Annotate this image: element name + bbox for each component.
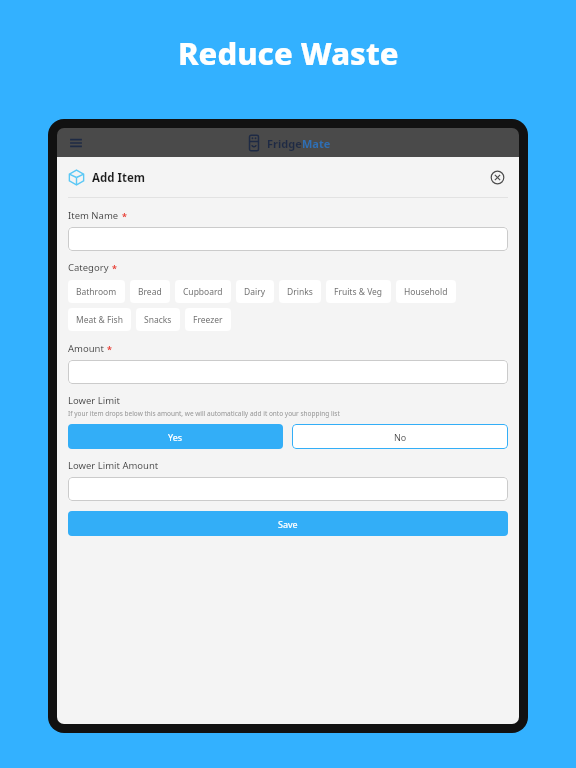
staticText: Yes bbox=[168, 431, 183, 443]
button[interactable]: Drinks bbox=[279, 280, 321, 303]
staticText: Meat & Fish bbox=[76, 314, 123, 326]
button[interactable]: Household bbox=[396, 280, 456, 303]
button[interactable]: Meat & Fish bbox=[68, 308, 131, 331]
staticText: Drinks bbox=[287, 286, 313, 298]
button[interactable] bbox=[68, 477, 508, 501]
staticText: Cupboard bbox=[183, 286, 223, 298]
staticText: Category bbox=[68, 261, 109, 274]
staticText: Amount bbox=[68, 342, 104, 355]
staticText: Bread bbox=[138, 286, 162, 298]
staticText: Lower Limit bbox=[68, 394, 120, 407]
button[interactable]: Bathroom bbox=[68, 280, 125, 303]
button[interactable]: Save bbox=[68, 511, 508, 536]
staticText: Bathroom bbox=[76, 286, 117, 298]
staticText: Freezer bbox=[193, 314, 223, 326]
button[interactable]: No bbox=[292, 424, 508, 449]
staticText: Fridge bbox=[267, 136, 302, 151]
button[interactable]: Dairy bbox=[236, 280, 274, 303]
button[interactable]: Bread bbox=[130, 280, 170, 303]
staticText: Save bbox=[278, 518, 298, 530]
staticText: Household bbox=[404, 286, 448, 298]
button[interactable]: Snacks bbox=[136, 308, 180, 331]
staticText: If your item drops below this amount, we… bbox=[68, 409, 340, 418]
button[interactable]: Cupboard bbox=[175, 280, 231, 303]
staticText: Mate bbox=[302, 136, 331, 151]
staticText: Dairy bbox=[244, 286, 266, 298]
staticText: * bbox=[122, 210, 127, 222]
staticText: * bbox=[112, 262, 117, 274]
staticText: Snacks bbox=[144, 314, 172, 326]
button[interactable] bbox=[68, 227, 508, 251]
staticText: Item Name bbox=[68, 209, 119, 222]
staticText: * bbox=[107, 343, 112, 355]
button[interactable]: Fruits & Veg bbox=[326, 280, 391, 303]
staticText: No bbox=[394, 431, 407, 443]
button[interactable]: Add Item bbox=[68, 169, 146, 186]
staticText: Fruits & Veg bbox=[334, 286, 383, 298]
button[interactable]: Close bbox=[486, 166, 508, 188]
staticText: Lower Limit Amount bbox=[68, 459, 159, 472]
staticText: Reduce Waste bbox=[178, 32, 399, 74]
button[interactable]: Menu bbox=[65, 132, 87, 154]
button[interactable]: Yes bbox=[68, 424, 283, 449]
button[interactable] bbox=[68, 360, 508, 384]
button[interactable]: Freezer bbox=[185, 308, 231, 331]
staticText: Add Item bbox=[92, 170, 146, 186]
